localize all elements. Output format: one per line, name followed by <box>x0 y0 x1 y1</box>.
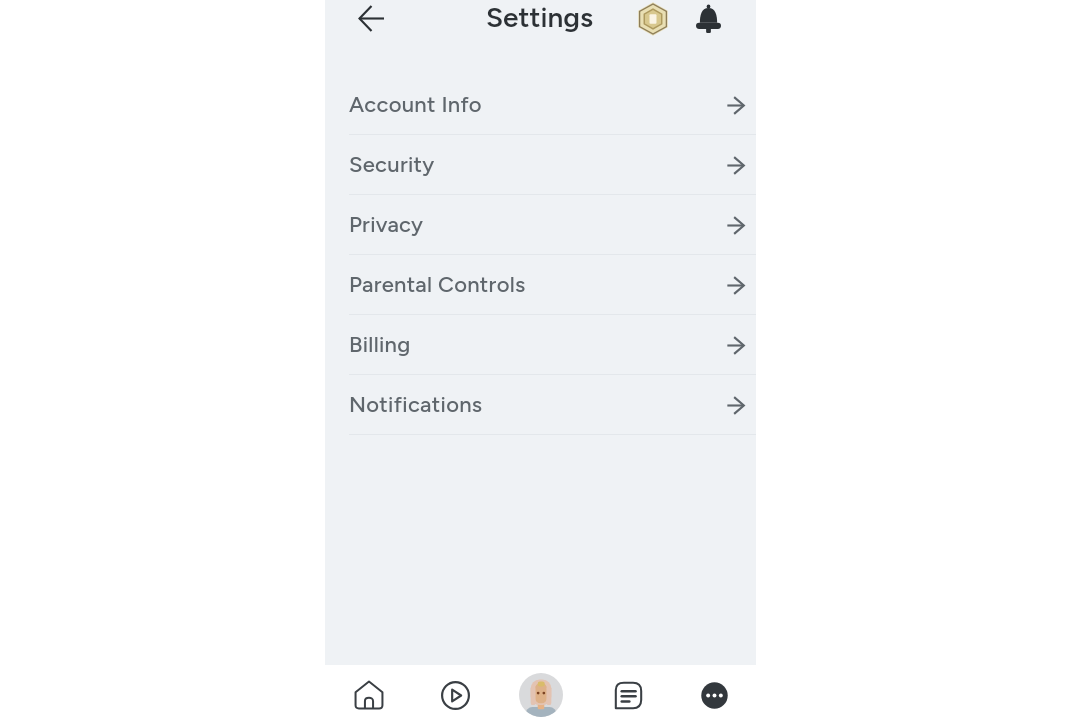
button[interactable]: Billing <box>325 315 756 375</box>
button[interactable]: Parental Controls <box>325 255 756 315</box>
staticText: Security <box>349 151 435 177</box>
button[interactable]: Privacy <box>325 195 756 255</box>
button[interactable]: Back <box>352 0 390 37</box>
button[interactable]: Security <box>325 135 756 195</box>
button[interactable]: Account Info <box>325 75 756 135</box>
staticText: Parental Controls <box>349 271 526 297</box>
button[interactable]: Robux balance <box>634 0 672 37</box>
staticText: Notifications <box>349 391 483 417</box>
staticText: Privacy <box>349 211 424 237</box>
staticText: Settings <box>486 0 594 34</box>
staticText: Account Info <box>349 91 482 117</box>
button[interactable]: Notifications <box>325 375 756 435</box>
button[interactable]: More <box>687 668 741 720</box>
staticText: Billing <box>349 331 411 357</box>
button[interactable]: Chat <box>601 668 655 720</box>
button[interactable]: Notifications <box>689 0 727 37</box>
button[interactable]: Home <box>342 668 396 720</box>
button[interactable]: Avatar <box>514 668 568 720</box>
button[interactable]: Charts <box>428 668 482 720</box>
